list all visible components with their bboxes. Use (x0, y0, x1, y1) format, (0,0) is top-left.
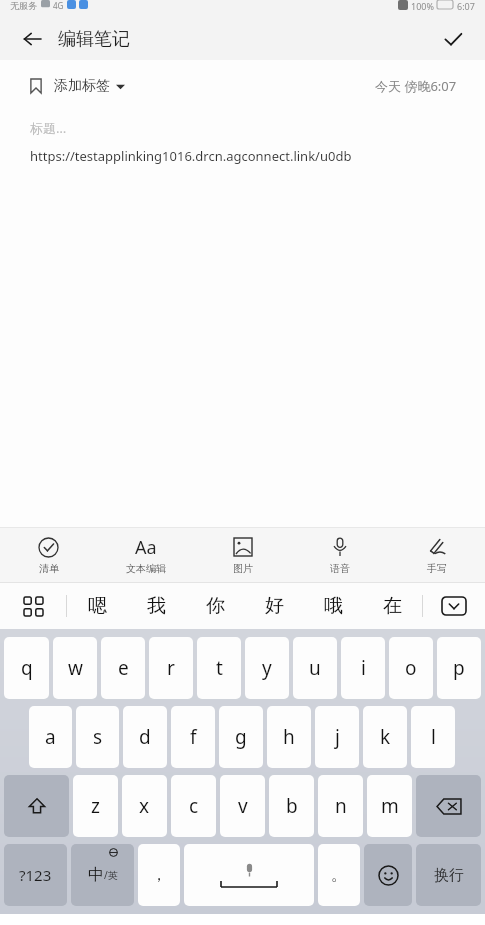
staticText: 手写 (427, 562, 447, 575)
staticText: l (431, 724, 436, 750)
staticText: 你 (206, 594, 225, 618)
staticText: i (361, 655, 366, 681)
staticText: w (68, 655, 83, 681)
staticText: e (118, 655, 129, 681)
button[interactable]: n (318, 775, 363, 837)
staticText: 标题… (30, 119, 67, 137)
button[interactable]: f (171, 706, 215, 768)
button[interactable]: k (363, 706, 407, 768)
button[interactable]: o (389, 637, 433, 699)
button[interactable]: Save (435, 21, 471, 57)
button[interactable]: Keyboard menu (0, 583, 66, 629)
staticText: 无服务 (10, 0, 37, 11)
staticText: o (405, 655, 417, 681)
button[interactable]: i (341, 637, 385, 699)
button[interactable]: s (76, 706, 119, 768)
button[interactable]: 手写 (388, 528, 485, 582)
button[interactable]: e (101, 637, 145, 699)
staticText: x (139, 793, 150, 819)
staticText: h (283, 724, 295, 750)
button[interactable]: v (220, 775, 265, 837)
button[interactable]: h (267, 706, 311, 768)
staticText: Aa (135, 535, 157, 559)
staticText: 语音 (330, 562, 350, 575)
button[interactable]: y (245, 637, 289, 699)
button[interactable]: 哦 (304, 583, 363, 629)
button[interactable]: q (4, 637, 49, 699)
staticText: 今天 傍晚6:07 (375, 77, 457, 95)
staticText: 文本编辑 (126, 562, 166, 575)
button[interactable]: Expand candidates (423, 583, 485, 629)
button[interactable]: 你 (186, 583, 245, 629)
button[interactable]: x (122, 775, 167, 837)
staticText: c (189, 793, 199, 819)
button[interactable]: Emoji (364, 844, 412, 906)
staticText: ， (151, 865, 167, 885)
button[interactable]: z (73, 775, 118, 837)
button[interactable]: Shift (4, 775, 69, 837)
button[interactable]: ?123 (4, 844, 67, 906)
button[interactable]: Back (14, 21, 50, 57)
staticText: 哦 (324, 594, 343, 618)
button[interactable]: 。 (318, 844, 360, 906)
button[interactable]: 在 (363, 583, 422, 629)
staticText: b (286, 793, 298, 819)
staticText: p (453, 655, 465, 681)
staticText: 换行 (434, 866, 464, 885)
button[interactable]: g (219, 706, 263, 768)
staticText: 图片 (233, 562, 253, 575)
staticText: https://testapplinking1016.drcn.agconnec… (30, 147, 352, 165)
button[interactable]: t (197, 637, 241, 699)
button[interactable]: 添加标签 (28, 73, 125, 99)
staticText: s (93, 724, 103, 750)
button[interactable]: m (367, 775, 412, 837)
staticText: t (216, 655, 223, 681)
staticText: 清单 (39, 562, 59, 575)
button[interactable]: d (123, 706, 167, 768)
staticText: 添加标签 (54, 77, 110, 95)
button[interactable]: p (437, 637, 481, 699)
button[interactable]: r (149, 637, 193, 699)
button[interactable]: b (269, 775, 314, 837)
staticText: 嗯 (88, 594, 107, 618)
button[interactable]: 语音 (291, 528, 388, 582)
staticText: a (45, 724, 56, 750)
button[interactable]: l (411, 706, 455, 768)
staticText: 100% (411, 0, 434, 12)
staticText: 。 (331, 865, 347, 885)
staticText: 我 (147, 594, 166, 618)
staticText: n (335, 793, 347, 819)
button[interactable]: c (171, 775, 216, 837)
button[interactable]: 图片 (194, 528, 291, 582)
button[interactable]: 中 (71, 844, 134, 906)
button[interactable]: j (315, 706, 359, 768)
button[interactable]: Space (184, 844, 314, 906)
staticText: f (190, 724, 197, 750)
button[interactable]: w (53, 637, 97, 699)
staticText: g (235, 724, 247, 750)
button[interactable]: u (293, 637, 337, 699)
staticText: 在 (383, 594, 402, 618)
button[interactable]: 好 (245, 583, 304, 629)
button[interactable]: Backspace (416, 775, 481, 837)
button[interactable]: 清单 (0, 528, 97, 582)
staticText: d (139, 724, 151, 750)
staticText: q (21, 655, 33, 681)
staticText: v (238, 793, 248, 819)
button[interactable]: 换行 (416, 844, 481, 906)
staticText: ?123 (19, 865, 52, 885)
button[interactable]: a (29, 706, 72, 768)
staticText: u (309, 655, 321, 681)
button[interactable]: ， (138, 844, 180, 906)
staticText: m (381, 793, 399, 819)
staticText: 4G (53, 0, 64, 11)
button[interactable]: 我 (127, 583, 186, 629)
staticText: 6:07 (457, 0, 475, 12)
staticText: j (335, 724, 340, 750)
staticText: r (167, 655, 175, 681)
button[interactable]: Aa (97, 528, 194, 582)
button[interactable]: 嗯 (67, 583, 127, 629)
staticText: z (91, 793, 100, 819)
staticText: 好 (265, 594, 284, 618)
staticText: 中 (88, 865, 104, 885)
